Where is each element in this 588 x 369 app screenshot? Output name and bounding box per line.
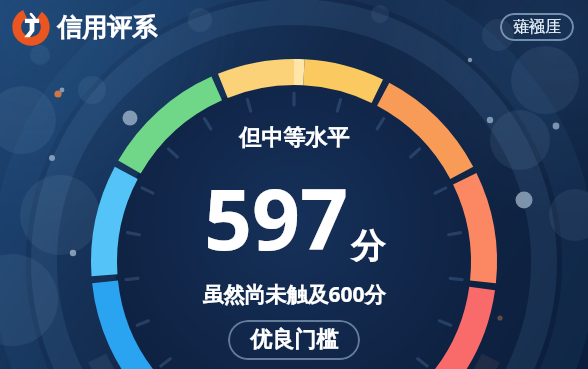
staticText: 薙襁厓 [513, 17, 561, 37]
staticText: 但中等水平 [239, 124, 349, 152]
staticText: 597 [204, 160, 349, 274]
staticText: 分 [351, 225, 385, 268]
button[interactable] [14, 10, 48, 44]
staticText: 信用评系 [57, 12, 157, 43]
button[interactable]: 薙襁厓 [500, 13, 574, 41]
staticText: 优良门槛 [250, 326, 338, 354]
button[interactable]: 优良门槛 [228, 320, 360, 360]
staticText: 虽然尚未触及600分 [202, 280, 386, 309]
